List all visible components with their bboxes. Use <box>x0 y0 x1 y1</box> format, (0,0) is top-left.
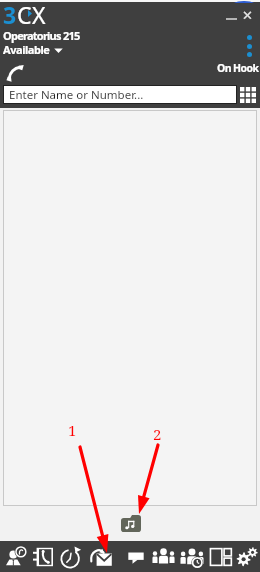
staticText: C <box>17 0 32 30</box>
button[interactable]: Dialpad <box>238 85 257 105</box>
button[interactable]: Chat <box>123 543 149 570</box>
button[interactable]: Call <box>4 62 24 82</box>
button[interactable]: Switchboard <box>208 543 234 570</box>
button[interactable]: Voicemail <box>88 543 114 570</box>
button[interactable]: Presence <box>3 543 29 570</box>
button[interactable]: Music on hold <box>121 515 141 532</box>
staticText: Enter Name or Number... <box>9 87 144 103</box>
staticText: 2 <box>153 424 162 444</box>
button[interactable]: More options <box>243 35 255 57</box>
button[interactable]: Conference <box>150 543 176 570</box>
staticText: 3 <box>3 0 17 30</box>
button[interactable]: Recent calls <box>58 543 84 570</box>
button[interactable]: Operatorius 215 <box>3 28 80 43</box>
staticText: ✕ <box>242 8 253 23</box>
staticText: X <box>32 0 46 30</box>
staticText: Available <box>3 42 50 57</box>
staticText: On Hook <box>217 61 259 75</box>
button[interactable]: Enter Name or Number... <box>3 85 237 104</box>
button[interactable]: Close <box>236 4 258 26</box>
staticText: 1 <box>68 420 77 440</box>
button[interactable]: Available <box>3 42 63 57</box>
button[interactable]: Minimize <box>220 6 242 28</box>
button[interactable]: Groups <box>179 543 205 570</box>
button[interactable]: Phonebook <box>30 543 56 570</box>
button[interactable]: Settings <box>234 543 260 570</box>
